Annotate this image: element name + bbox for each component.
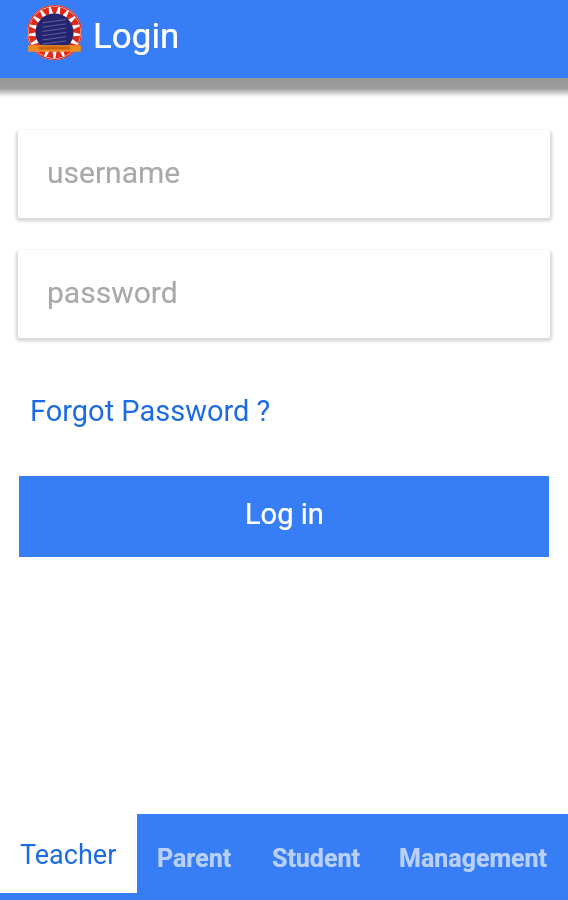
staticText: Login [93,16,180,57]
button[interactable]: Teacher [0,814,137,893]
staticText: password [47,275,178,310]
button[interactable]: Forgot Password ? [28,394,273,428]
staticText: Student [272,844,360,873]
button[interactable]: password [14,246,554,342]
staticText: Parent [157,844,232,873]
button[interactable]: Log in [19,476,549,557]
staticText: Management [399,844,548,873]
button[interactable]: Parent [137,814,252,893]
staticText: Log in [245,497,324,531]
button[interactable]: Student [252,814,380,893]
staticText: Forgot Password ? [30,394,271,428]
staticText: Teacher [20,839,117,871]
staticText: username [47,155,181,190]
other: School logo [27,5,82,60]
button[interactable]: Management [380,814,567,893]
button[interactable]: username [14,126,554,222]
